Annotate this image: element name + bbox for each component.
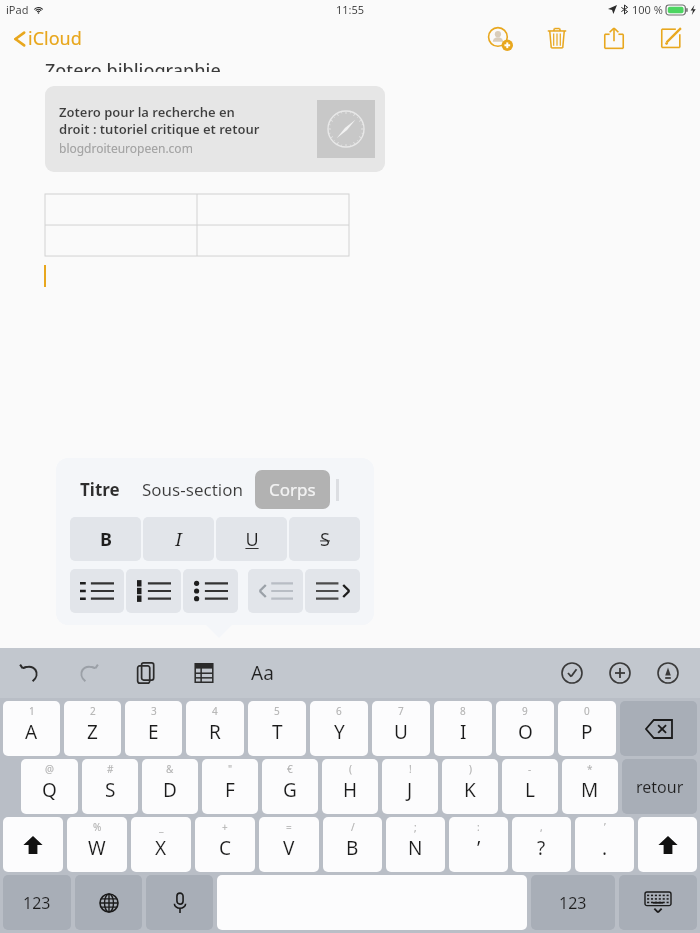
staticText: % <box>93 820 102 834</box>
button[interactable]: Compose <box>656 23 686 53</box>
staticText: Sous-section <box>142 478 243 501</box>
staticText: I <box>175 527 182 552</box>
staticText: A <box>25 719 38 745</box>
staticText: ( <box>349 762 352 776</box>
staticText: R <box>209 719 221 745</box>
staticText: 123 <box>23 892 51 914</box>
button[interactable]: 123 <box>531 875 615 930</box>
staticText: = <box>286 820 292 834</box>
button[interactable]: Hide keyboard <box>619 875 697 930</box>
button[interactable]: 8 <box>434 701 492 756</box>
button[interactable]: * <box>562 759 618 814</box>
button[interactable]: Checklist <box>556 657 588 689</box>
button[interactable]: Shift <box>638 817 697 872</box>
staticText: Zotero pour la recherche en droit : tuto… <box>59 103 260 138</box>
staticText: ’ <box>604 820 606 834</box>
button[interactable]: " <box>202 759 258 814</box>
button[interactable]: 9 <box>496 701 554 756</box>
staticText: Titre <box>80 478 120 501</box>
button[interactable]: Backspace <box>620 701 697 756</box>
button[interactable]: U <box>216 517 287 561</box>
button[interactable]: ! <box>382 759 438 814</box>
button[interactable]: - <box>502 759 558 814</box>
staticText: & <box>166 762 174 776</box>
button[interactable]: : <box>449 817 508 872</box>
button[interactable]: I <box>143 517 214 561</box>
button[interactable]: List style <box>70 569 124 613</box>
button[interactable]: iCloud <box>10 22 86 55</box>
button[interactable]: Undo <box>14 657 46 689</box>
button[interactable]: / <box>323 817 382 872</box>
button[interactable]: 7 <box>372 701 430 756</box>
button[interactable]: ’ <box>575 817 634 872</box>
staticText: Zotero bibliographie <box>45 58 221 72</box>
button[interactable]: Share <box>599 23 629 53</box>
button[interactable]: @ <box>21 759 78 814</box>
button[interactable]: Markup <box>652 657 684 689</box>
staticText: U <box>245 527 259 552</box>
staticText: T <box>272 719 283 745</box>
button[interactable]: S <box>289 517 360 561</box>
button[interactable]: Titre <box>70 470 130 509</box>
staticText: 1 <box>29 704 35 718</box>
staticText: 2 <box>90 704 96 718</box>
button[interactable]: , <box>512 817 571 872</box>
button[interactable]: List style <box>126 569 181 613</box>
staticText: 100 % <box>632 2 663 17</box>
button[interactable]: # <box>82 759 138 814</box>
button[interactable]: Add attachment <box>604 657 636 689</box>
button[interactable]: 1 <box>3 701 60 756</box>
staticText: O <box>518 719 533 745</box>
button[interactable]: ( <box>322 759 378 814</box>
staticText: C <box>219 835 232 861</box>
button[interactable]: List style <box>305 569 360 613</box>
button[interactable]: Change keyboard <box>75 875 142 930</box>
staticText: ! <box>409 762 412 776</box>
button[interactable]: € <box>262 759 318 814</box>
staticText: S <box>105 777 116 803</box>
button[interactable]: 3 <box>125 701 182 756</box>
button[interactable]: Corps <box>255 470 330 509</box>
staticText: retour <box>636 776 684 798</box>
button[interactable]: + <box>195 817 255 872</box>
staticText: G <box>283 777 297 803</box>
button[interactable]: List style <box>183 569 238 613</box>
staticText: W <box>88 835 106 861</box>
button[interactable]: Add people <box>485 23 515 53</box>
button[interactable]: List style <box>248 569 303 613</box>
staticText: + <box>222 820 228 834</box>
staticText: " <box>228 762 233 776</box>
button[interactable]: 4 <box>186 701 244 756</box>
staticText: H <box>343 777 358 803</box>
button[interactable]: 0 <box>558 701 616 756</box>
button[interactable]: Table <box>188 657 220 689</box>
button[interactable]: % <box>67 817 127 872</box>
staticText: M <box>581 777 599 803</box>
staticText: 123 <box>559 892 587 914</box>
button[interactable]: 123 <box>3 875 71 930</box>
staticText: X <box>155 835 167 861</box>
button[interactable]: 2 <box>64 701 121 756</box>
staticText: J <box>407 777 413 803</box>
button[interactable]: 6 <box>310 701 368 756</box>
staticText: N <box>408 835 423 861</box>
button[interactable]: retour <box>622 759 697 814</box>
staticText: ? <box>537 835 546 861</box>
button[interactable]: ; <box>386 817 445 872</box>
button[interactable]: Delete <box>542 23 572 53</box>
button[interactable]: Paste <box>130 657 162 689</box>
button[interactable]: Sous-section <box>134 470 251 509</box>
button[interactable]: B <box>70 517 141 561</box>
staticText: ) <box>469 762 472 776</box>
button[interactable]: = <box>259 817 319 872</box>
button[interactable]: ) <box>442 759 498 814</box>
button[interactable]: Redo <box>72 657 104 689</box>
button[interactable]: 5 <box>248 701 306 756</box>
button[interactable]: _ <box>131 817 191 872</box>
button[interactable]: Zotero pour la recherche en droit : tuto… <box>45 86 385 172</box>
button[interactable]: Dictate <box>146 875 213 930</box>
button[interactable]: & <box>142 759 198 814</box>
button[interactable]: Aa <box>246 657 278 689</box>
button[interactable]: Shift <box>3 817 63 872</box>
